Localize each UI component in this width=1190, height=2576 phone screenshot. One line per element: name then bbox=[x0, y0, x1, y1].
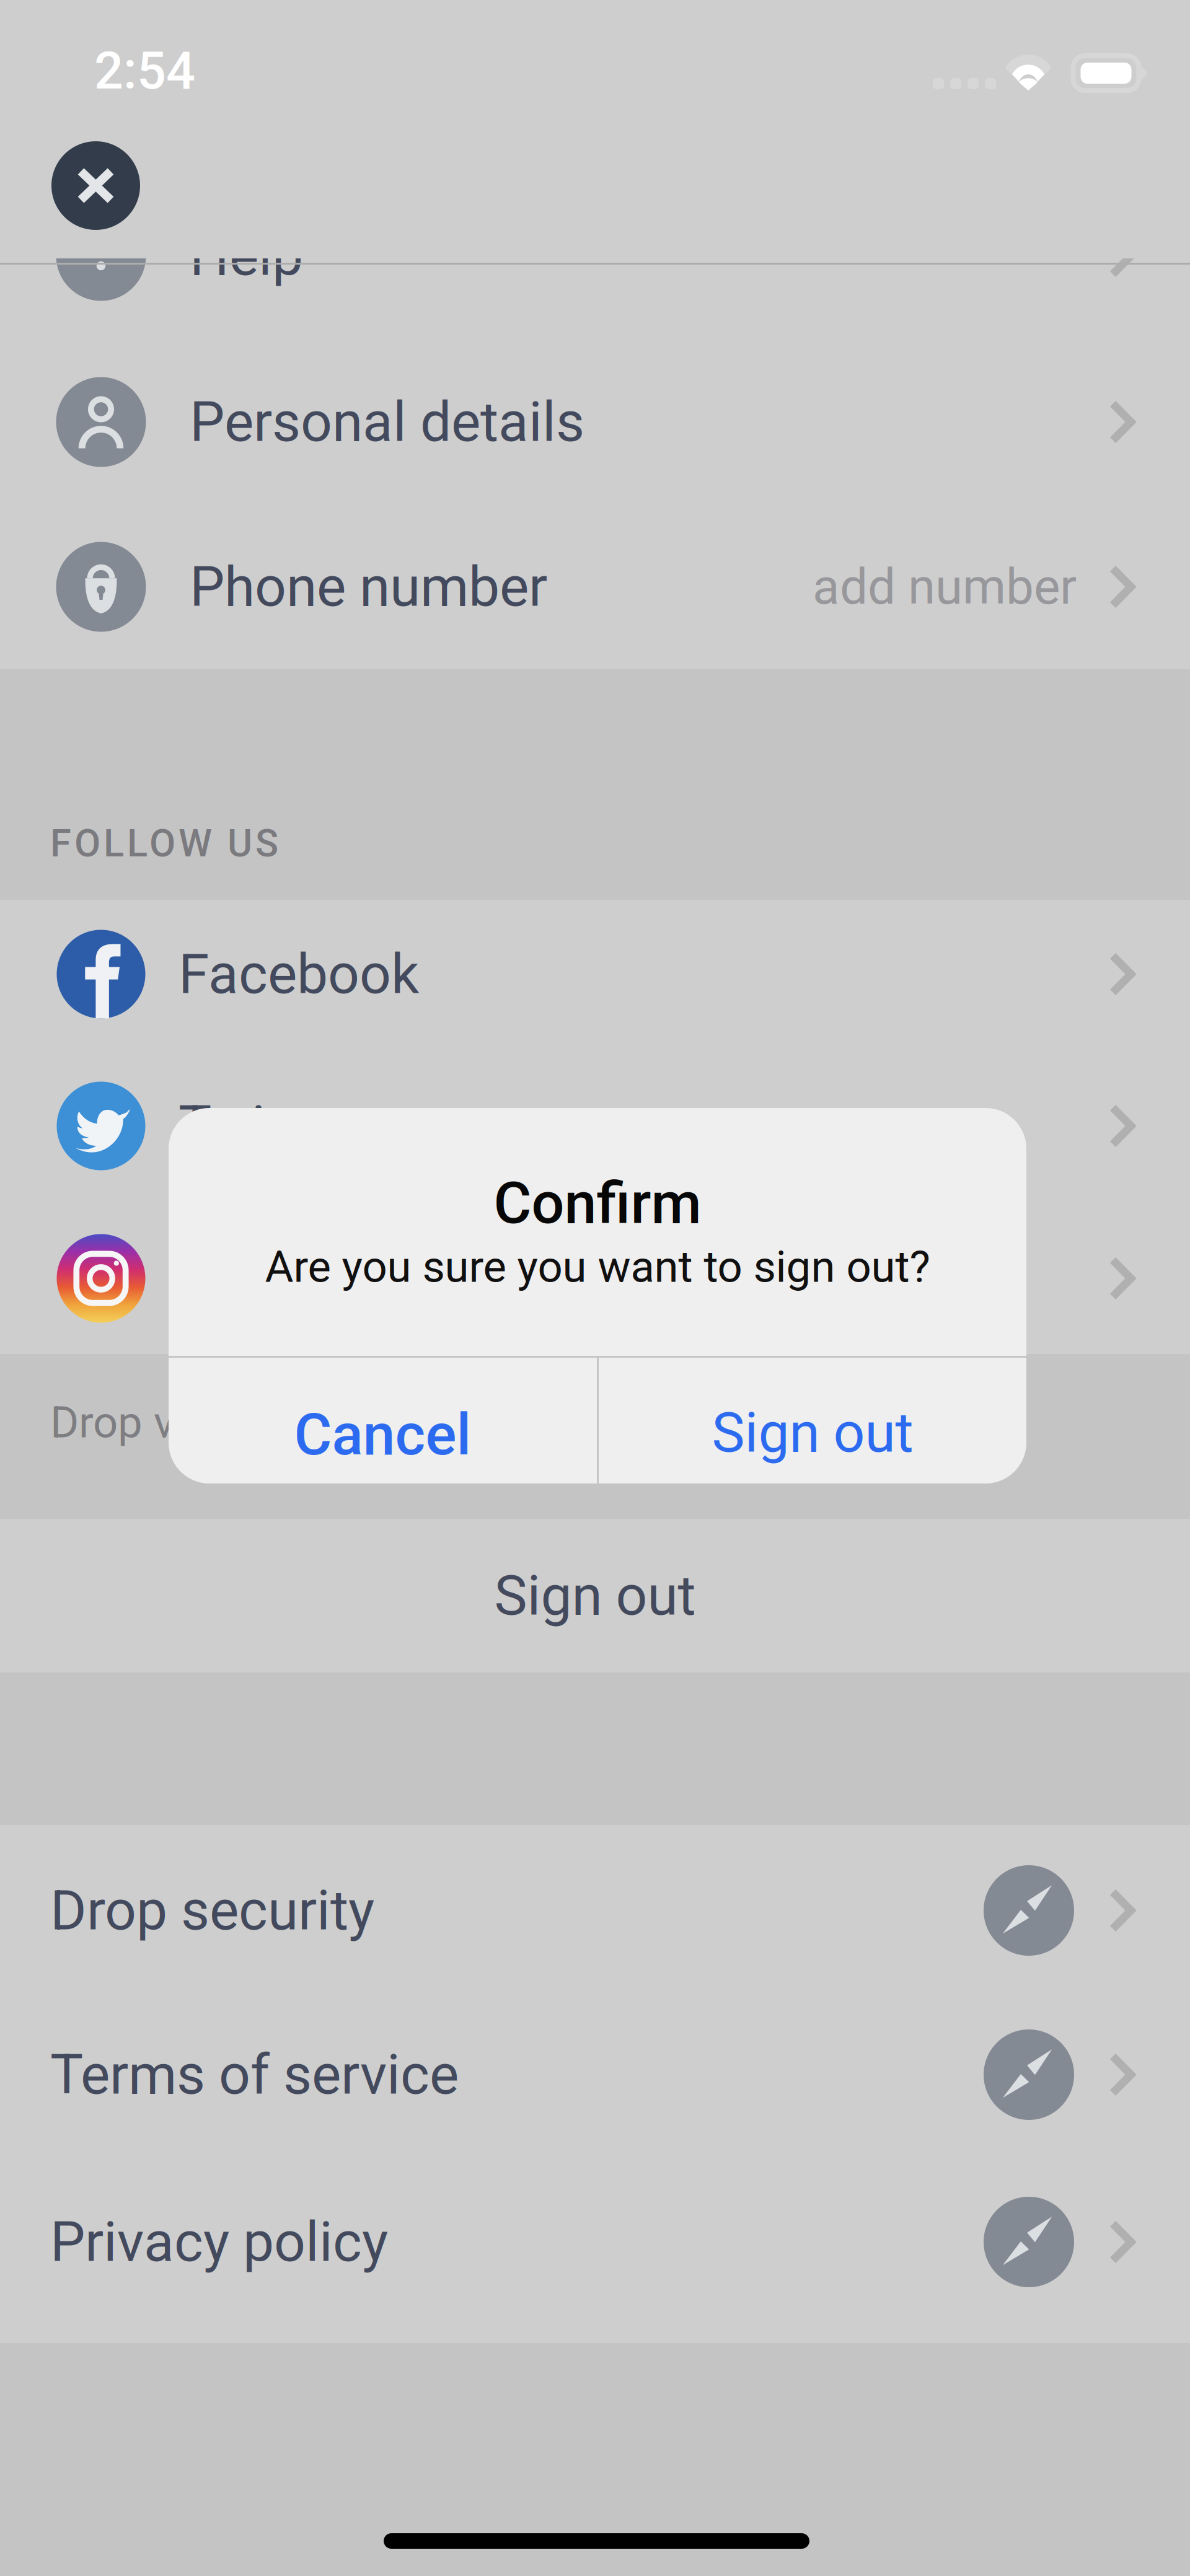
staticText: Drop version 2.14.0 bbox=[50, 1397, 428, 1448]
staticText: FOLLOW US bbox=[50, 821, 278, 866]
staticText: Facebook bbox=[178, 942, 419, 1007]
staticText: Cancel bbox=[294, 1401, 471, 1468]
button[interactable]: Twitter bbox=[0, 1050, 1190, 1202]
staticText: Instagram bbox=[178, 1246, 428, 1311]
staticText: Personal details bbox=[190, 390, 584, 454]
staticText: Twitter bbox=[178, 1094, 349, 1158]
staticText: Sign out bbox=[712, 1400, 913, 1465]
button[interactable]: Cancel bbox=[169, 1371, 597, 1498]
button[interactable]: Sign out bbox=[599, 1369, 1026, 1497]
staticText: Are you sure you want to sign out? bbox=[265, 1241, 930, 1293]
staticText: Confirm bbox=[494, 1169, 701, 1237]
staticText: Sign out bbox=[494, 1563, 696, 1628]
staticText: Privacy policy bbox=[50, 2210, 388, 2274]
staticText: Terms of service bbox=[50, 2042, 459, 2107]
button[interactable]: Phone number bbox=[0, 511, 1190, 663]
button[interactable]: Instagram bbox=[0, 1202, 1190, 1355]
button[interactable]: Personal details bbox=[0, 346, 1190, 498]
button[interactable]: Help bbox=[0, 180, 1190, 332]
staticText: add number bbox=[813, 558, 1077, 616]
button[interactable]: Facebook bbox=[0, 898, 1190, 1050]
button[interactable]: Sign out bbox=[0, 1519, 1190, 1673]
button[interactable]: Privacy policy bbox=[0, 2168, 1190, 2316]
button[interactable]: Close bbox=[51, 141, 140, 230]
staticText: Drop security bbox=[50, 1878, 374, 1943]
button[interactable]: Drop security bbox=[0, 1836, 1190, 1985]
staticText: 2:54 bbox=[94, 41, 195, 101]
staticText: Phone number bbox=[190, 554, 547, 619]
button[interactable]: Terms of service bbox=[0, 2000, 1190, 2149]
staticText: Help bbox=[190, 224, 303, 288]
